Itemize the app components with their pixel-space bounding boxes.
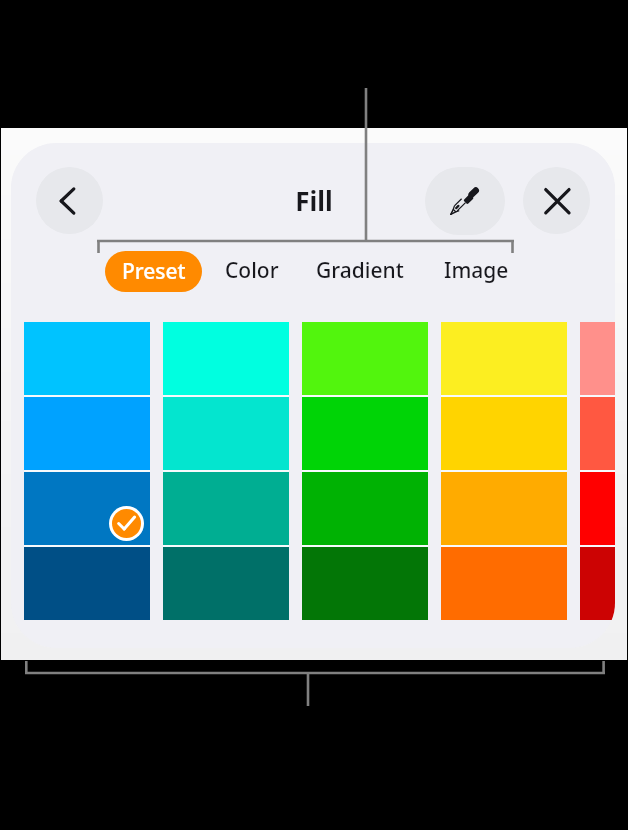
button[interactable]: Image (444, 249, 509, 292)
staticText: Gradient (316, 256, 404, 285)
button[interactable]: Back (36, 167, 103, 234)
button[interactable] (24, 472, 150, 545)
staticText: Preset (122, 257, 186, 286)
staticText: Image (444, 256, 509, 285)
button[interactable]: Gradient (316, 249, 404, 292)
button[interactable]: Preset (105, 251, 202, 292)
button[interactable]: Close (523, 167, 590, 234)
button[interactable]: Use eyedropper (425, 167, 505, 235)
button[interactable]: Color (225, 249, 279, 292)
staticText: Color (225, 256, 279, 285)
button[interactable] (580, 547, 615, 620)
staticText: Fill (295, 183, 333, 218)
